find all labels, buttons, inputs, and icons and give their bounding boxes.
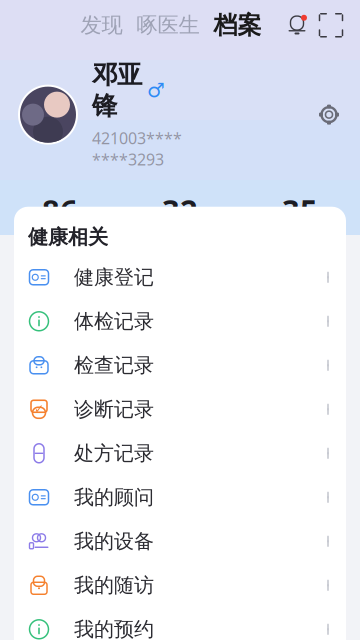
staticText: 检查记录 [74, 353, 154, 378]
staticText: ✓ [34, 402, 44, 416]
staticText: 啄医生 [136, 12, 199, 38]
staticText: ♂ [147, 79, 165, 102]
staticText: 健康登记 [74, 265, 154, 290]
button[interactable]: 体检记录 [14, 299, 346, 343]
button[interactable]: 处方记录 [14, 431, 346, 475]
staticText: 32 [162, 190, 198, 231]
button[interactable]: 我的预约 [14, 607, 346, 640]
staticText: 86 [42, 190, 78, 231]
button[interactable]: 我的顾问 [14, 475, 346, 519]
staticText: 421003********3293 [92, 127, 182, 170]
staticText: 35 [282, 190, 318, 231]
staticText: 诊断记录 [74, 397, 154, 422]
button[interactable]: 档案 [206, 6, 268, 44]
button[interactable]: 扫一扫 [316, 10, 346, 40]
button[interactable]: 啄医生 [129, 6, 206, 44]
staticText: 我的随访 [74, 573, 154, 598]
staticText: 发现 [80, 12, 122, 38]
button[interactable]: 通知 [282, 10, 312, 40]
button[interactable]: 我的随访 [14, 563, 346, 607]
staticText: 检查次数 [30, 236, 90, 254]
staticText: 我的顾问 [74, 485, 154, 510]
staticText: 档案 [213, 10, 261, 40]
button[interactable]: 我的设备 [14, 519, 346, 563]
staticText: 邓亚锋 [92, 59, 142, 121]
staticText: 我的设备 [74, 529, 154, 554]
button[interactable]: 健康登记 [14, 255, 346, 299]
button[interactable]: ✓ [14, 387, 346, 431]
button[interactable]: 发现 [73, 6, 129, 44]
staticText: 体检记录 [74, 309, 154, 334]
staticText: 健康相关 [28, 225, 108, 249]
button[interactable]: 检查记录 [14, 343, 346, 387]
button[interactable]: 设置 [312, 98, 346, 132]
staticText: 处方记录 [74, 441, 154, 466]
staticText: 我的预约 [74, 617, 154, 640]
